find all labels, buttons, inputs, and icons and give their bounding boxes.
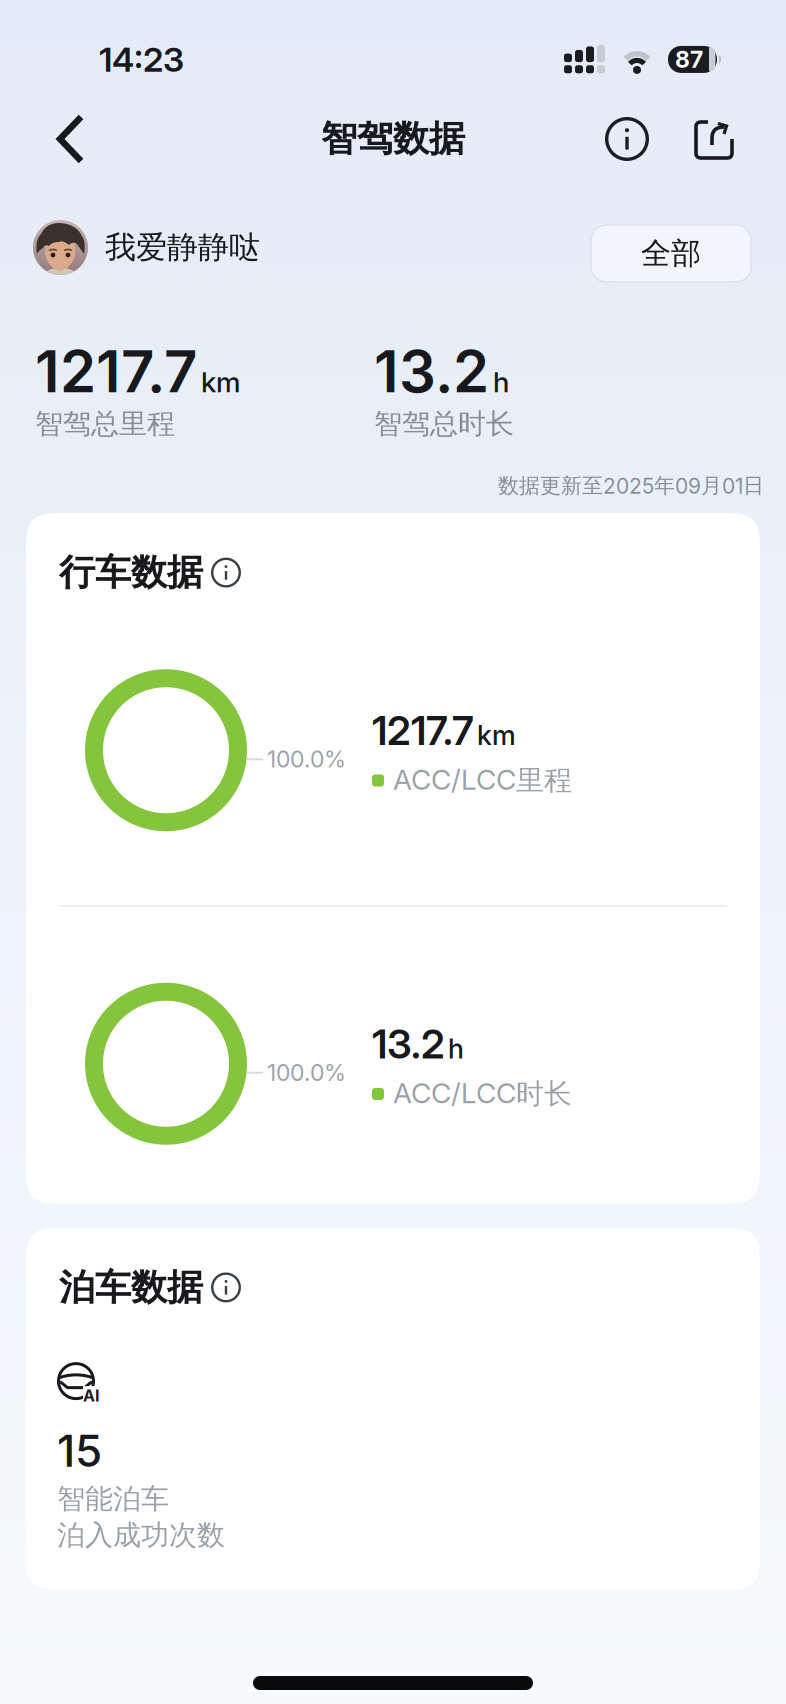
staticText: 1217.7 bbox=[35, 336, 197, 406]
staticText: 智驾总时长 bbox=[374, 406, 514, 441]
staticText: 87 bbox=[675, 45, 703, 73]
staticText: 13.2 bbox=[374, 336, 489, 406]
staticText: 我爱静静哒 bbox=[105, 228, 260, 267]
staticText: 全部 bbox=[641, 235, 701, 272]
button[interactable]: Info bbox=[605, 108, 649, 161]
staticText: 智驾数据 bbox=[321, 116, 465, 161]
staticText: 智驾总里程 bbox=[35, 406, 175, 441]
staticText: AI bbox=[83, 1386, 99, 1405]
staticText: 数据更新至2025年09月01日 bbox=[498, 472, 764, 499]
staticText: ACC/LCC时长 bbox=[393, 1076, 572, 1112]
button[interactable]: 全部 bbox=[591, 219, 751, 276]
staticText: 行车数据 bbox=[59, 550, 203, 595]
staticText: km bbox=[201, 365, 241, 399]
staticText: 泊入成功次数 bbox=[57, 1518, 225, 1553]
staticText: 13.2 bbox=[372, 1020, 445, 1068]
staticText: 智能泊车 bbox=[57, 1481, 169, 1517]
staticText: 100.0% bbox=[267, 745, 346, 773]
staticText: 14:23 bbox=[99, 39, 184, 80]
staticText: h bbox=[448, 1032, 464, 1065]
staticText: ACC/LCC里程 bbox=[393, 763, 572, 798]
staticText: 100.0% bbox=[267, 1059, 346, 1087]
button[interactable]: Share bbox=[694, 108, 734, 161]
staticText: 15 bbox=[57, 1424, 102, 1477]
button[interactable]: Back bbox=[0, 108, 85, 164]
staticText: 泊车数据 bbox=[59, 1265, 203, 1310]
staticText: h bbox=[493, 365, 509, 399]
staticText: 1217.7 bbox=[372, 706, 474, 755]
staticText: km bbox=[477, 719, 516, 752]
